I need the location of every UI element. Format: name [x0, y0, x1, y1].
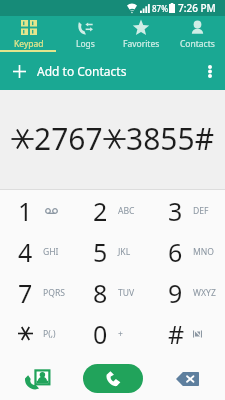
staticText: 0	[93, 317, 108, 351]
staticText: 87%	[152, 3, 168, 14]
button[interactable]: 1	[0, 190, 75, 231]
button[interactable]: 6	[150, 231, 225, 272]
button[interactable]: 4	[0, 231, 75, 272]
button[interactable]: Call	[83, 364, 143, 393]
button[interactable]: Add to contacts	[0, 356, 75, 400]
button[interactable]: More options	[198, 59, 222, 83]
staticText: GHI	[43, 246, 59, 258]
staticText: 2767	[34, 118, 103, 159]
staticText: 3855#	[126, 118, 215, 159]
button[interactable]: 0	[75, 313, 150, 354]
button[interactable]: Logs	[57, 18, 113, 52]
staticText: 8	[93, 276, 108, 310]
staticText: DEF	[193, 205, 209, 217]
button[interactable]: 5	[75, 231, 150, 272]
button[interactable]: 7	[0, 272, 75, 313]
staticText: WXYZ	[193, 287, 216, 299]
button[interactable]: Favorites	[113, 18, 169, 52]
staticText: P(,)	[43, 328, 56, 340]
staticText: Keypad	[14, 38, 44, 50]
button[interactable]: Add to Contacts	[13, 63, 127, 79]
staticText: Contacts	[180, 38, 215, 50]
button[interactable]: 3	[150, 190, 225, 231]
staticText: 3	[168, 194, 183, 228]
staticText: ABC	[118, 205, 135, 217]
button[interactable]: 9	[150, 272, 225, 313]
button[interactable]: #	[150, 313, 225, 354]
button[interactable]: Keypad	[0, 18, 57, 52]
staticText: 2	[93, 194, 108, 228]
button[interactable]: Contacts	[169, 18, 225, 52]
staticText: TUV	[118, 287, 135, 299]
staticText: 6	[168, 235, 183, 269]
staticText: #	[168, 317, 185, 351]
staticText: Logs	[76, 38, 95, 50]
button[interactable]: 8	[75, 272, 150, 313]
staticText: Favorites	[123, 38, 160, 50]
button[interactable]: star	[0, 313, 75, 354]
button[interactable]: Backspace	[150, 356, 225, 400]
staticText: 4	[18, 235, 33, 269]
staticText: 9	[168, 276, 183, 310]
staticText: +	[118, 328, 123, 340]
staticText: Add to Contacts	[37, 63, 127, 79]
button[interactable]: 2	[75, 190, 150, 231]
staticText: PQRS	[43, 287, 65, 299]
staticText: 7:26 PM	[178, 1, 216, 15]
staticText: 7	[18, 276, 33, 310]
staticText: JKL	[118, 246, 131, 258]
staticText: MNO	[193, 246, 215, 258]
staticText: 1	[18, 194, 33, 228]
staticText: 5	[93, 235, 108, 269]
